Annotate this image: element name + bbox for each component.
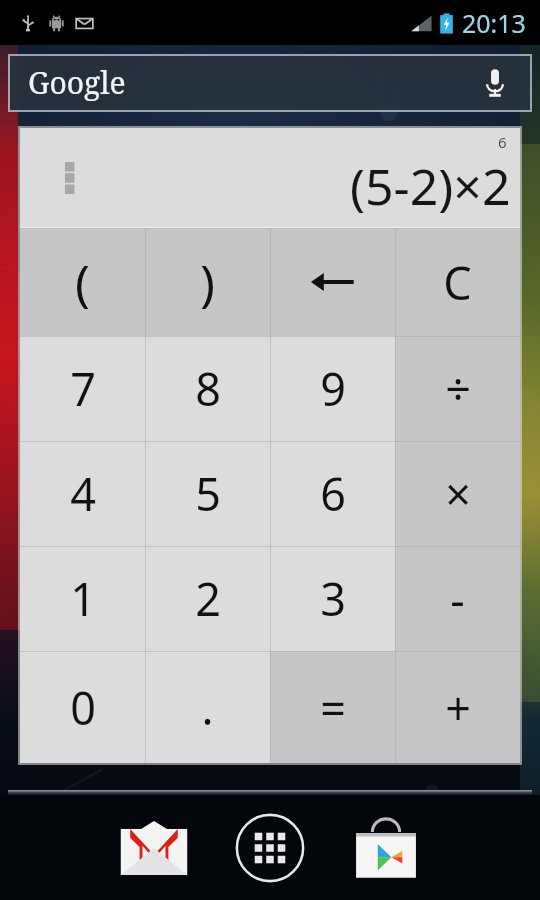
button[interactable]: + [395,651,520,763]
button[interactable]: 6 [270,441,395,546]
button[interactable]: . [145,651,270,763]
staticText: 7 [70,358,96,419]
staticText: 0 [70,677,96,738]
staticText: 20:13 [462,6,526,40]
button[interactable]: ) [145,228,270,336]
button[interactable]: Voice search [474,62,516,104]
button[interactable]: 5 [145,441,270,546]
button[interactable]: Gmail [114,808,194,888]
button[interactable]: 8 [145,336,270,441]
staticText: ) [200,248,215,316]
button[interactable]: 3 [270,546,395,651]
staticText: 3 [320,568,346,629]
button[interactable]: Google [10,56,530,110]
staticText: 6 [498,132,507,152]
staticText: ( [75,248,90,316]
staticText: 2 [195,568,221,629]
button[interactable]: 7 [20,336,145,441]
button[interactable]: C [395,228,520,336]
staticText: - [450,568,465,629]
staticText: (5-2)×2 [350,152,511,220]
staticText: ÷ [445,358,471,419]
staticText: + [445,677,471,738]
staticText: 1 [70,568,96,629]
staticText: 5 [195,463,221,524]
staticText: = [320,677,346,738]
button[interactable]: 9 [270,336,395,441]
staticText: Google [28,62,126,103]
staticText: 6 [320,463,346,524]
button[interactable]: ÷ [395,336,520,441]
staticText: × [445,463,471,524]
staticText: C [443,252,472,313]
button[interactable]: Backspace [270,228,395,336]
button[interactable]: 0 [20,651,145,763]
button[interactable]: 1 [20,546,145,651]
button[interactable]: 4 [20,441,145,546]
staticText: 8 [195,358,221,419]
button[interactable]: Play Store [346,808,426,888]
staticText: . [201,677,214,738]
staticText: 9 [320,358,346,419]
button[interactable]: = [270,651,395,763]
button[interactable]: - [395,546,520,651]
button[interactable]: More options [48,156,92,200]
button[interactable]: × [395,441,520,546]
button[interactable]: Apps [230,808,310,888]
button[interactable]: 2 [145,546,270,651]
button[interactable]: ( [20,228,145,336]
staticText: 4 [70,463,96,524]
